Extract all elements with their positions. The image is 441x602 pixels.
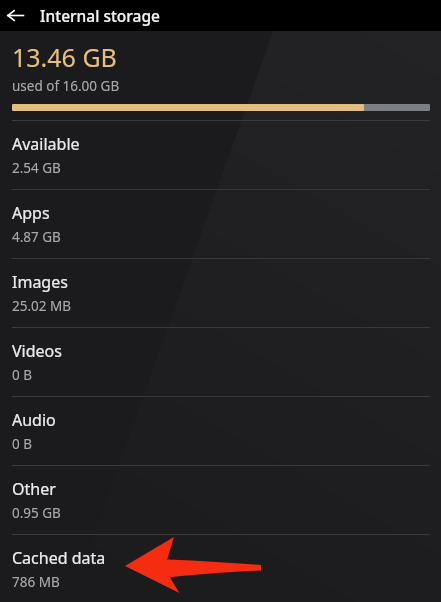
button[interactable]: Cached data <box>0 535 441 602</box>
staticText: 2.54 GB <box>12 159 61 177</box>
staticText: 0 B <box>12 435 33 453</box>
staticText: 25.02 MB <box>12 297 72 315</box>
button[interactable]: Audio <box>0 397 441 465</box>
staticText: used of 16.00 GB <box>12 77 120 95</box>
staticText: 786 MB <box>12 573 60 591</box>
staticText: 0.95 GB <box>12 504 61 522</box>
staticText: Other <box>12 478 56 500</box>
staticText: Apps <box>12 202 50 224</box>
button[interactable]: Videos <box>0 328 441 396</box>
staticText: 0 B <box>12 366 33 384</box>
staticText: 13.46 GB <box>12 40 117 74</box>
staticText: Images <box>12 271 68 293</box>
button[interactable]: Apps <box>0 190 441 258</box>
staticText: 4.87 GB <box>12 228 61 246</box>
button[interactable]: Available <box>0 121 441 189</box>
staticText: Internal storage <box>40 5 160 26</box>
button[interactable]: Images <box>0 259 441 327</box>
button[interactable]: Navigate up <box>0 0 31 31</box>
staticText: Available <box>12 133 80 155</box>
button[interactable]: Other <box>0 466 441 534</box>
staticText: Videos <box>12 340 62 362</box>
staticText: Cached data <box>12 547 106 569</box>
staticText: Audio <box>12 409 56 431</box>
